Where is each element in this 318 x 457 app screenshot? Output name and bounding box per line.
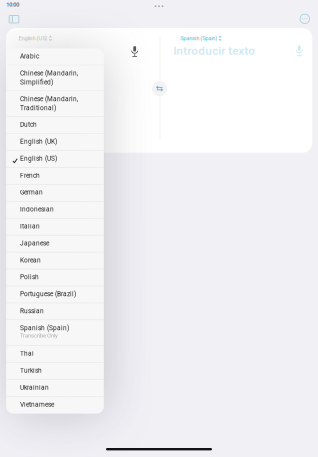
staticText: Dutch	[20, 121, 37, 128]
button[interactable]: Chinese (Mandarin, Traditional)	[6, 91, 104, 117]
staticText: Spanish (Spain)	[20, 324, 69, 332]
staticText: Spanish (Spain)	[180, 35, 217, 42]
button[interactable]: English (UK)	[6, 134, 104, 151]
staticText: Arabic	[20, 52, 39, 60]
staticText: Polish	[20, 273, 39, 281]
button[interactable]: French	[6, 168, 104, 184]
button[interactable]: Indonesian	[6, 201, 104, 218]
button[interactable]: Spanish (Spain)	[6, 320, 104, 346]
button[interactable]: Dictate English	[126, 42, 144, 60]
button[interactable]: Arabic	[6, 48, 104, 65]
button[interactable]: More options	[296, 10, 314, 28]
staticText: Turkish	[20, 367, 42, 374]
staticText: French	[20, 172, 40, 179]
staticText: Chinese (Mandarin, Simplified)	[20, 69, 78, 86]
staticText: 10:00	[6, 1, 19, 8]
staticText: Indonesian	[20, 205, 54, 213]
staticText: German	[20, 189, 43, 196]
staticText: Italian	[20, 222, 40, 230]
button[interactable]: Chinese (Mandarin, Simplified)	[6, 65, 104, 91]
staticText: English (US)	[20, 155, 57, 162]
staticText: English (UK)	[20, 138, 57, 145]
staticText: Thai	[20, 350, 34, 357]
button[interactable]: German	[6, 185, 104, 201]
staticText: Portuguese (Brazil)	[20, 290, 76, 298]
button[interactable]: Spanish (Spain)	[178, 33, 223, 44]
staticText: Chinese (Mandarin, Traditional)	[20, 95, 78, 112]
button[interactable]: Polish	[6, 269, 104, 286]
button[interactable]: Turkish	[6, 363, 104, 380]
staticText: Russian	[20, 307, 44, 315]
staticText: Japanese	[20, 239, 49, 247]
staticText: Introducir texto	[173, 44, 255, 58]
button[interactable]: Dutch	[6, 117, 104, 134]
staticText: English (US)	[18, 35, 47, 42]
button[interactable]: Dictate Spanish	[290, 42, 308, 60]
staticText: Korean	[20, 256, 41, 264]
button[interactable]: Ukrainian	[6, 380, 104, 397]
button[interactable]: Russian	[6, 303, 104, 320]
staticText: Transcribe Only	[20, 332, 58, 339]
button[interactable]: Korean	[6, 252, 104, 269]
button[interactable]: Japanese	[6, 235, 104, 252]
button[interactable]: English (US)	[16, 33, 54, 44]
button[interactable]: Swap languages	[151, 80, 168, 97]
button[interactable]: Thai	[6, 346, 104, 363]
staticText: Ukrainian	[20, 384, 49, 391]
button[interactable]: Vietnamese	[6, 397, 104, 413]
button[interactable]: Portuguese (Brazil)	[6, 286, 104, 303]
staticText: Vietnamese	[20, 401, 54, 408]
button[interactable]: Show sidebar	[3, 10, 25, 28]
button[interactable]: English (US)	[6, 151, 104, 168]
button[interactable]: Italian	[6, 218, 104, 235]
